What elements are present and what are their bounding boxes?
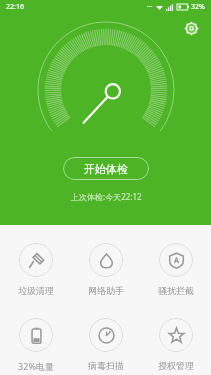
staticText: 22:16 [6, 2, 24, 12]
staticText: 骚扰拦截 [158, 285, 194, 296]
button[interactable]: 32%电量 [0, 316, 71, 374]
button[interactable]: 病毒扫描 [71, 316, 141, 373]
staticText: 授权管理 [158, 360, 194, 371]
staticText: ··· [147, 2, 153, 12]
staticText: 网络助手 [88, 285, 124, 296]
button[interactable]: 开始体检 [63, 157, 149, 180]
staticText: 开始体检 [84, 162, 128, 176]
staticText: 上次体检:今天22:12 [71, 191, 142, 202]
button[interactable]: Settings [179, 16, 203, 40]
staticText: 32% [191, 2, 205, 12]
staticText: 32%电量 [18, 360, 54, 372]
button[interactable]: 骚扰拦截 [141, 241, 211, 298]
button[interactable]: 垃圾清理 [0, 241, 71, 298]
staticText: 垃圾清理 [18, 285, 54, 296]
staticText: 病毒扫描 [88, 360, 124, 371]
button[interactable]: 网络助手 [71, 241, 141, 298]
button[interactable]: 授权管理 [141, 316, 211, 373]
